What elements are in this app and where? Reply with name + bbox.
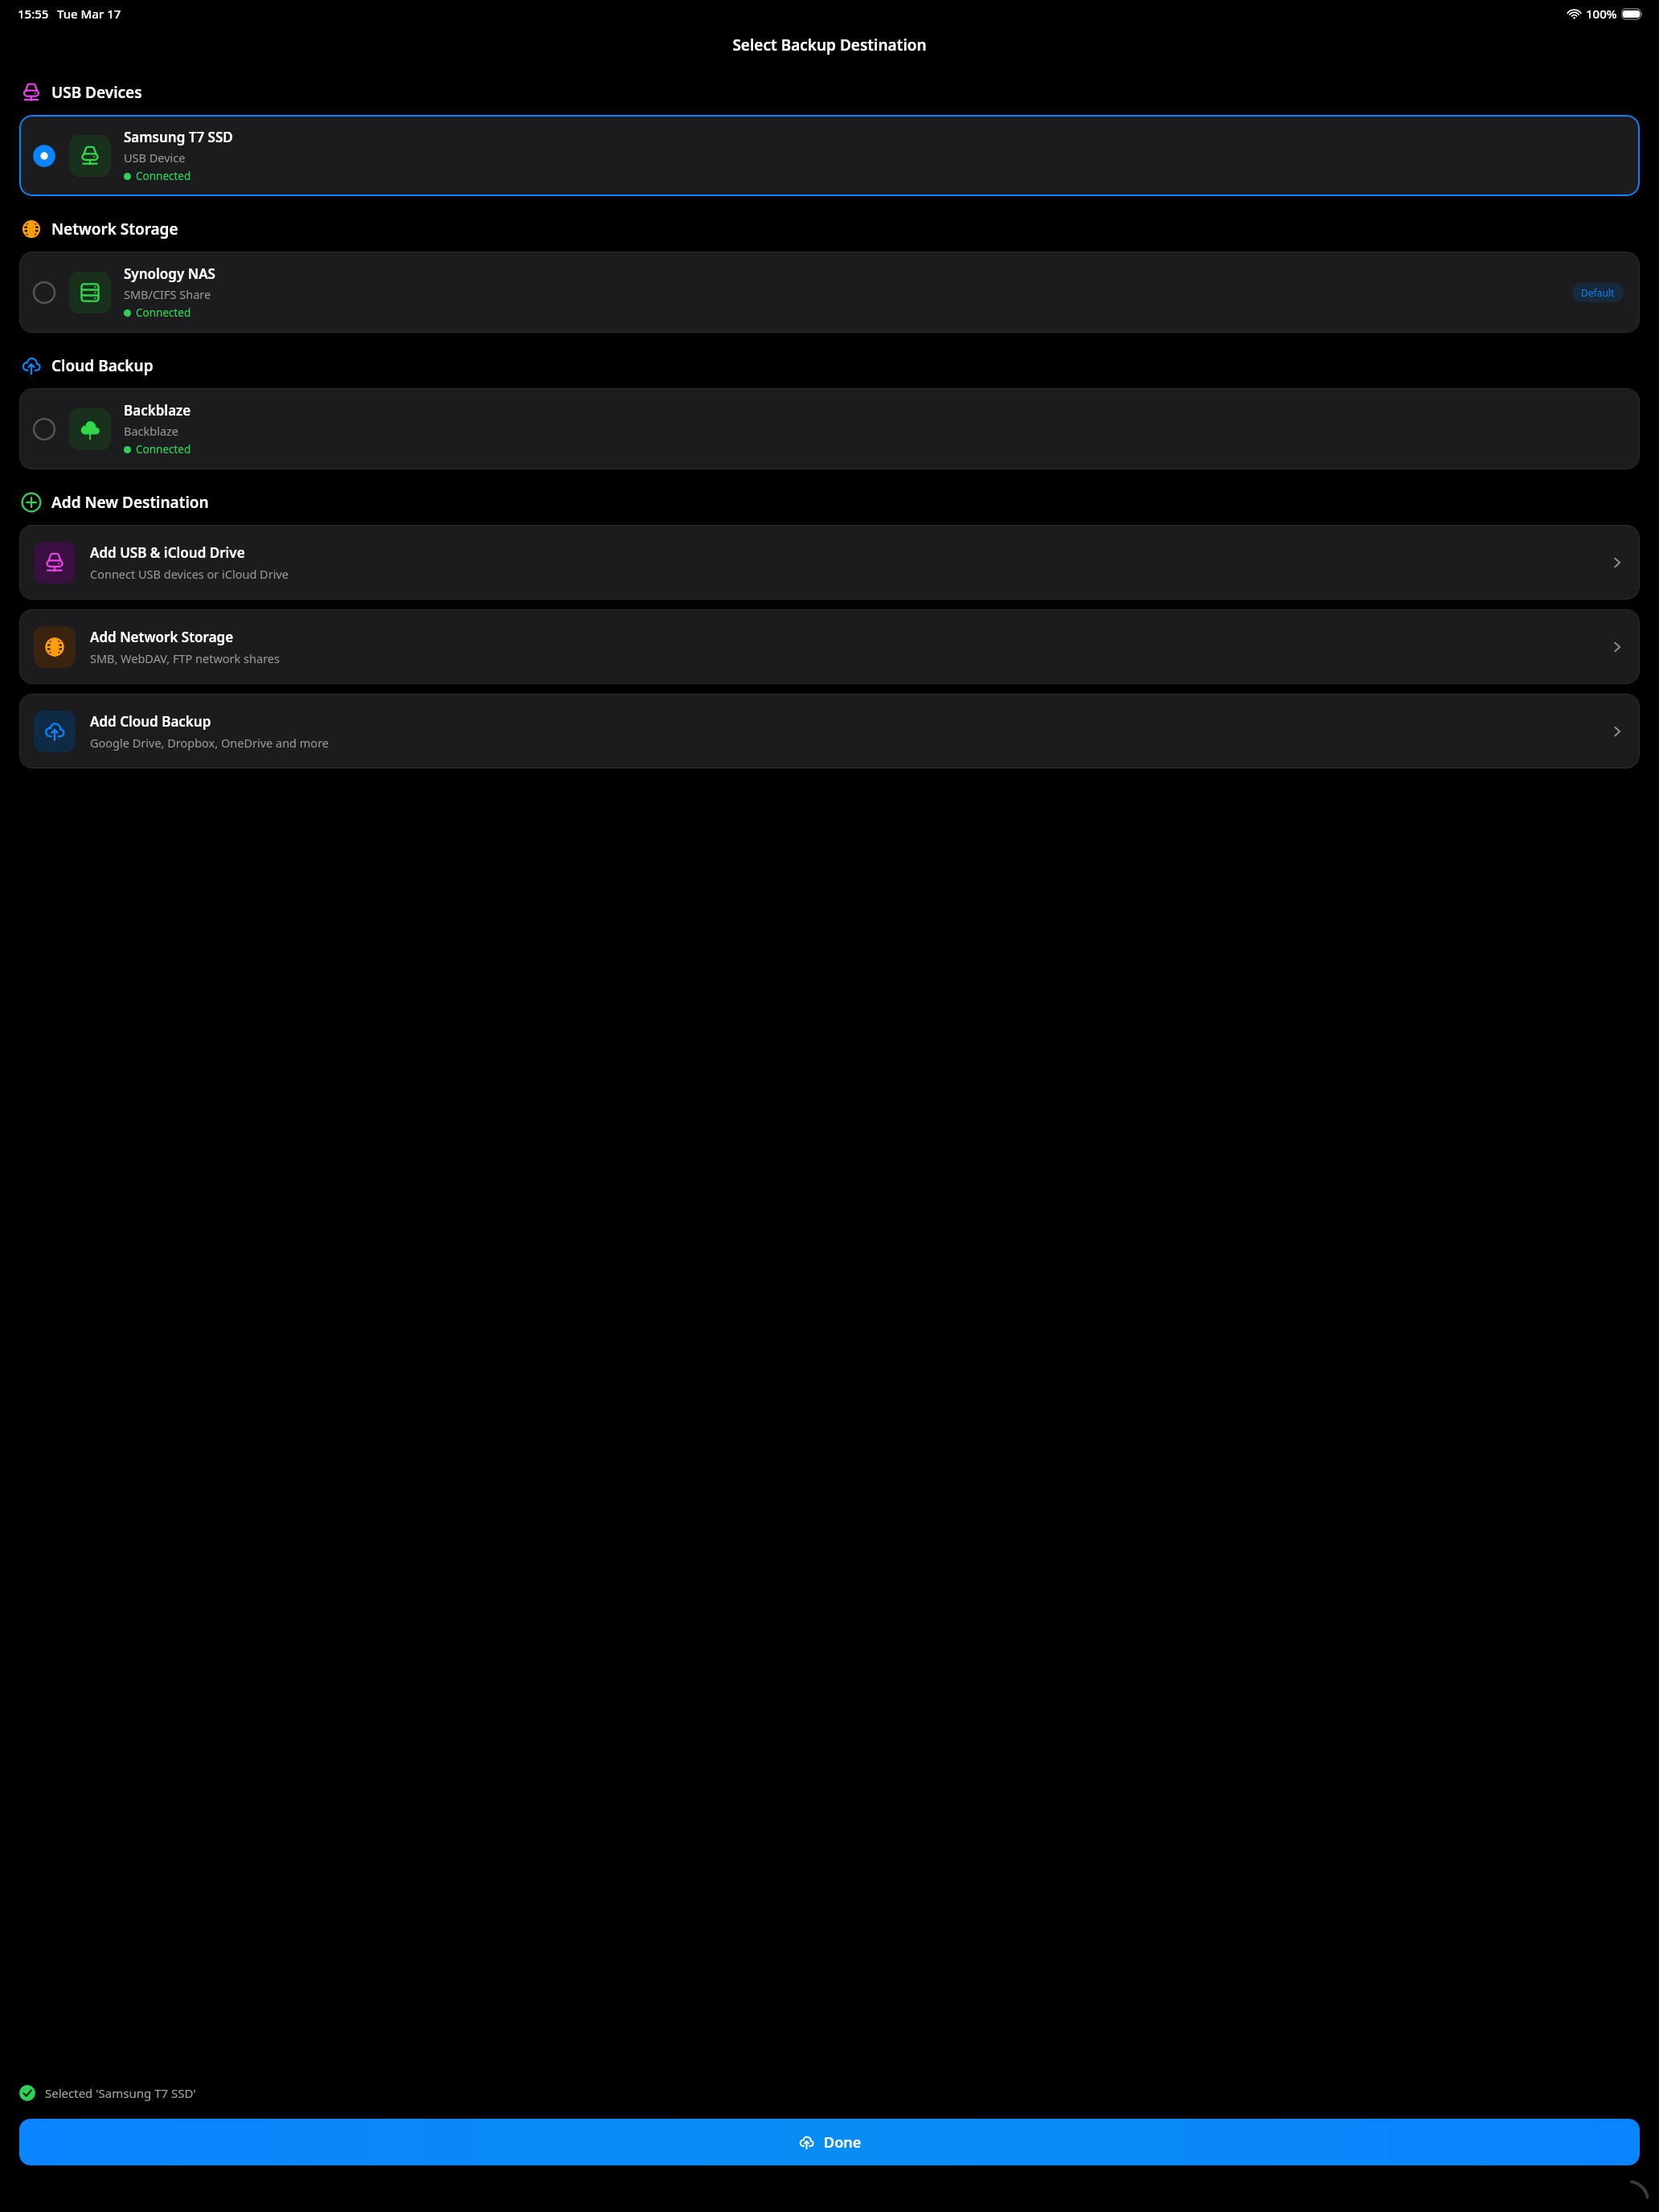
- staticText: Add Cloud Backup: [90, 712, 211, 731]
- staticText: Add USB & iCloud Drive: [90, 543, 245, 562]
- staticText: SMB/CIFS Share: [124, 286, 211, 302]
- staticText: Connected: [136, 442, 191, 457]
- staticText: Connected: [136, 305, 191, 320]
- staticText: Select Backup Destination: [732, 35, 927, 55]
- button[interactable]: Synology NAS: [19, 252, 1640, 333]
- staticText: Done: [824, 2132, 862, 2153]
- staticText: Google Drive, Dropbox, OneDrive and more: [90, 735, 330, 751]
- staticText: 100%: [1586, 6, 1617, 22]
- staticText: Connect USB devices or iCloud Drive: [90, 566, 289, 582]
- button[interactable]: Samsung T7 SSD: [19, 115, 1640, 196]
- staticText: SMB, WebDAV, FTP network shares: [90, 650, 280, 666]
- staticText: USB Devices: [51, 82, 142, 103]
- button[interactable]: Add Cloud Backup: [19, 694, 1640, 768]
- staticText: 15:55: [18, 6, 49, 22]
- staticText: Backblaze: [124, 401, 191, 420]
- staticText: Tue Mar 17: [57, 6, 121, 22]
- staticText: Cloud Backup: [51, 355, 154, 376]
- staticText: Add New Destination: [51, 492, 209, 513]
- staticText: Connected: [136, 169, 191, 183]
- staticText: Add Network Storage: [90, 628, 234, 646]
- button[interactable]: Done: [19, 2119, 1640, 2165]
- staticText: Synology NAS: [124, 264, 215, 283]
- staticText: Default: [1581, 286, 1615, 299]
- staticText: Backblaze: [124, 423, 179, 439]
- staticText: Selected 'Samsung T7 SSD': [45, 2085, 196, 2101]
- staticText: Network Storage: [51, 219, 178, 240]
- staticText: Samsung T7 SSD: [124, 128, 233, 146]
- staticText: USB Device: [124, 150, 186, 166]
- button[interactable]: Add Network Storage: [19, 609, 1640, 684]
- button[interactable]: Add USB & iCloud Drive: [19, 525, 1640, 600]
- button[interactable]: Backblaze: [19, 388, 1640, 469]
